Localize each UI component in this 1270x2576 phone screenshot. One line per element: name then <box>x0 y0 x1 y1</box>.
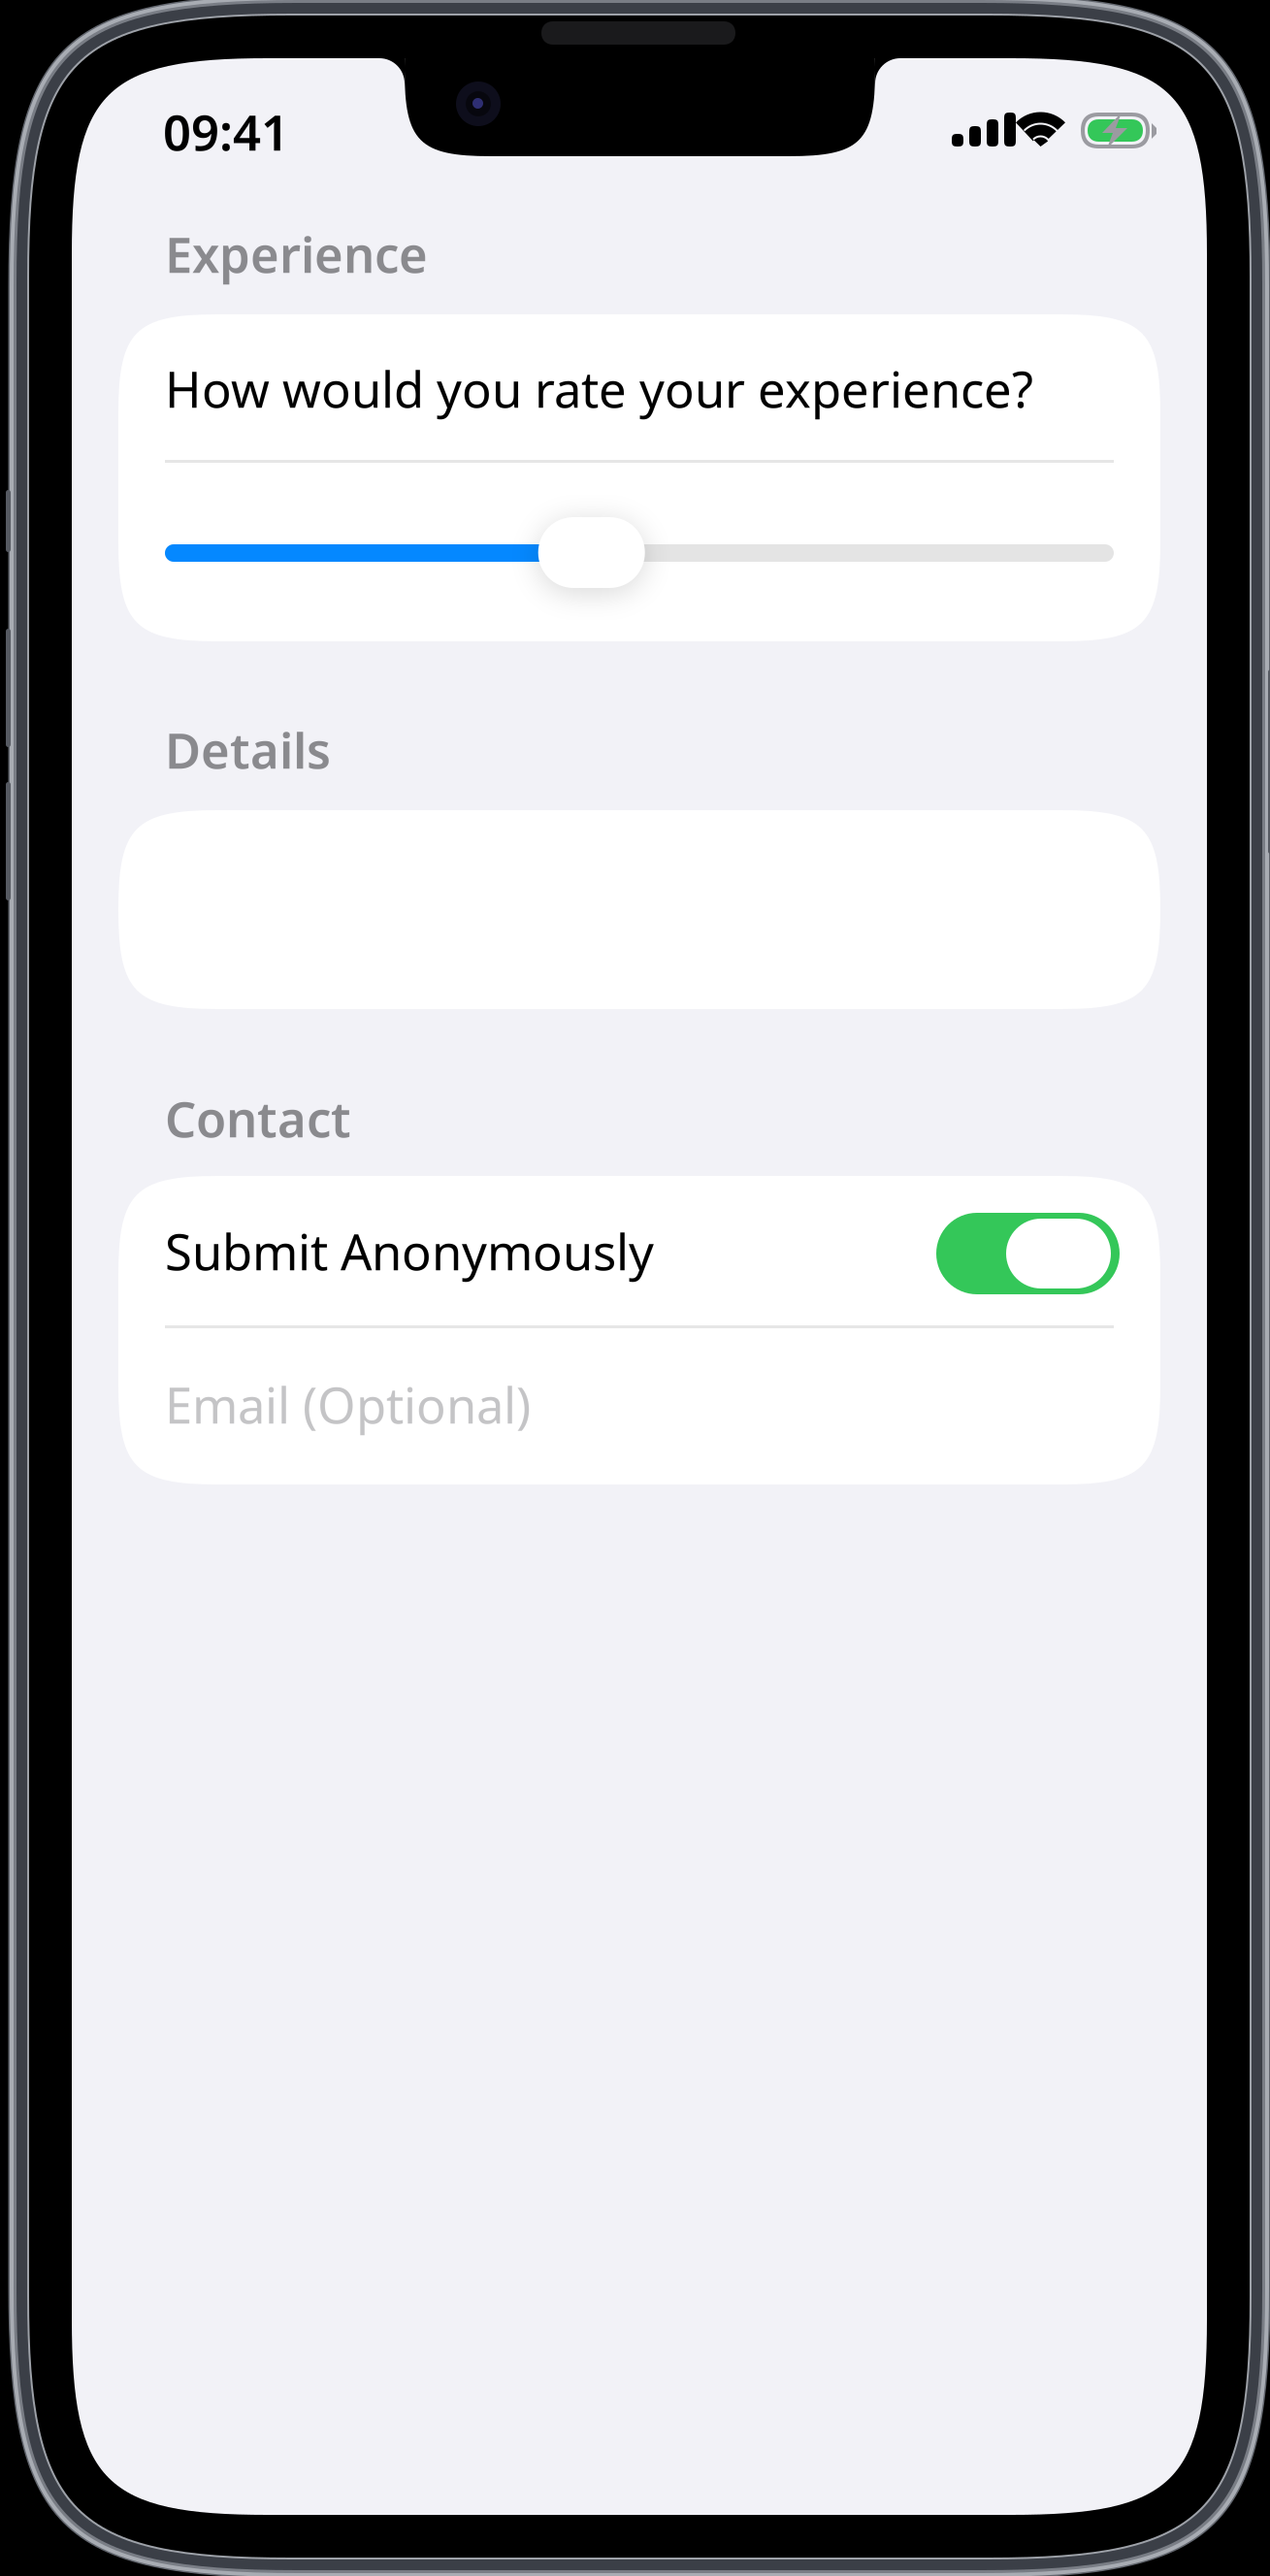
staticText: How would you rate your experience? <box>165 356 1033 421</box>
button[interactable]: Submit Anonymously <box>936 1213 1120 1294</box>
staticText: Experience <box>165 221 428 287</box>
staticText: Email (Optional) <box>165 1372 531 1437</box>
staticText: Submit Anonymously <box>165 1219 654 1284</box>
button[interactable]: Rating <box>538 517 645 588</box>
staticText: 09:41 <box>163 99 289 164</box>
staticText: Contact <box>165 1086 351 1151</box>
staticText: Details <box>165 717 331 782</box>
